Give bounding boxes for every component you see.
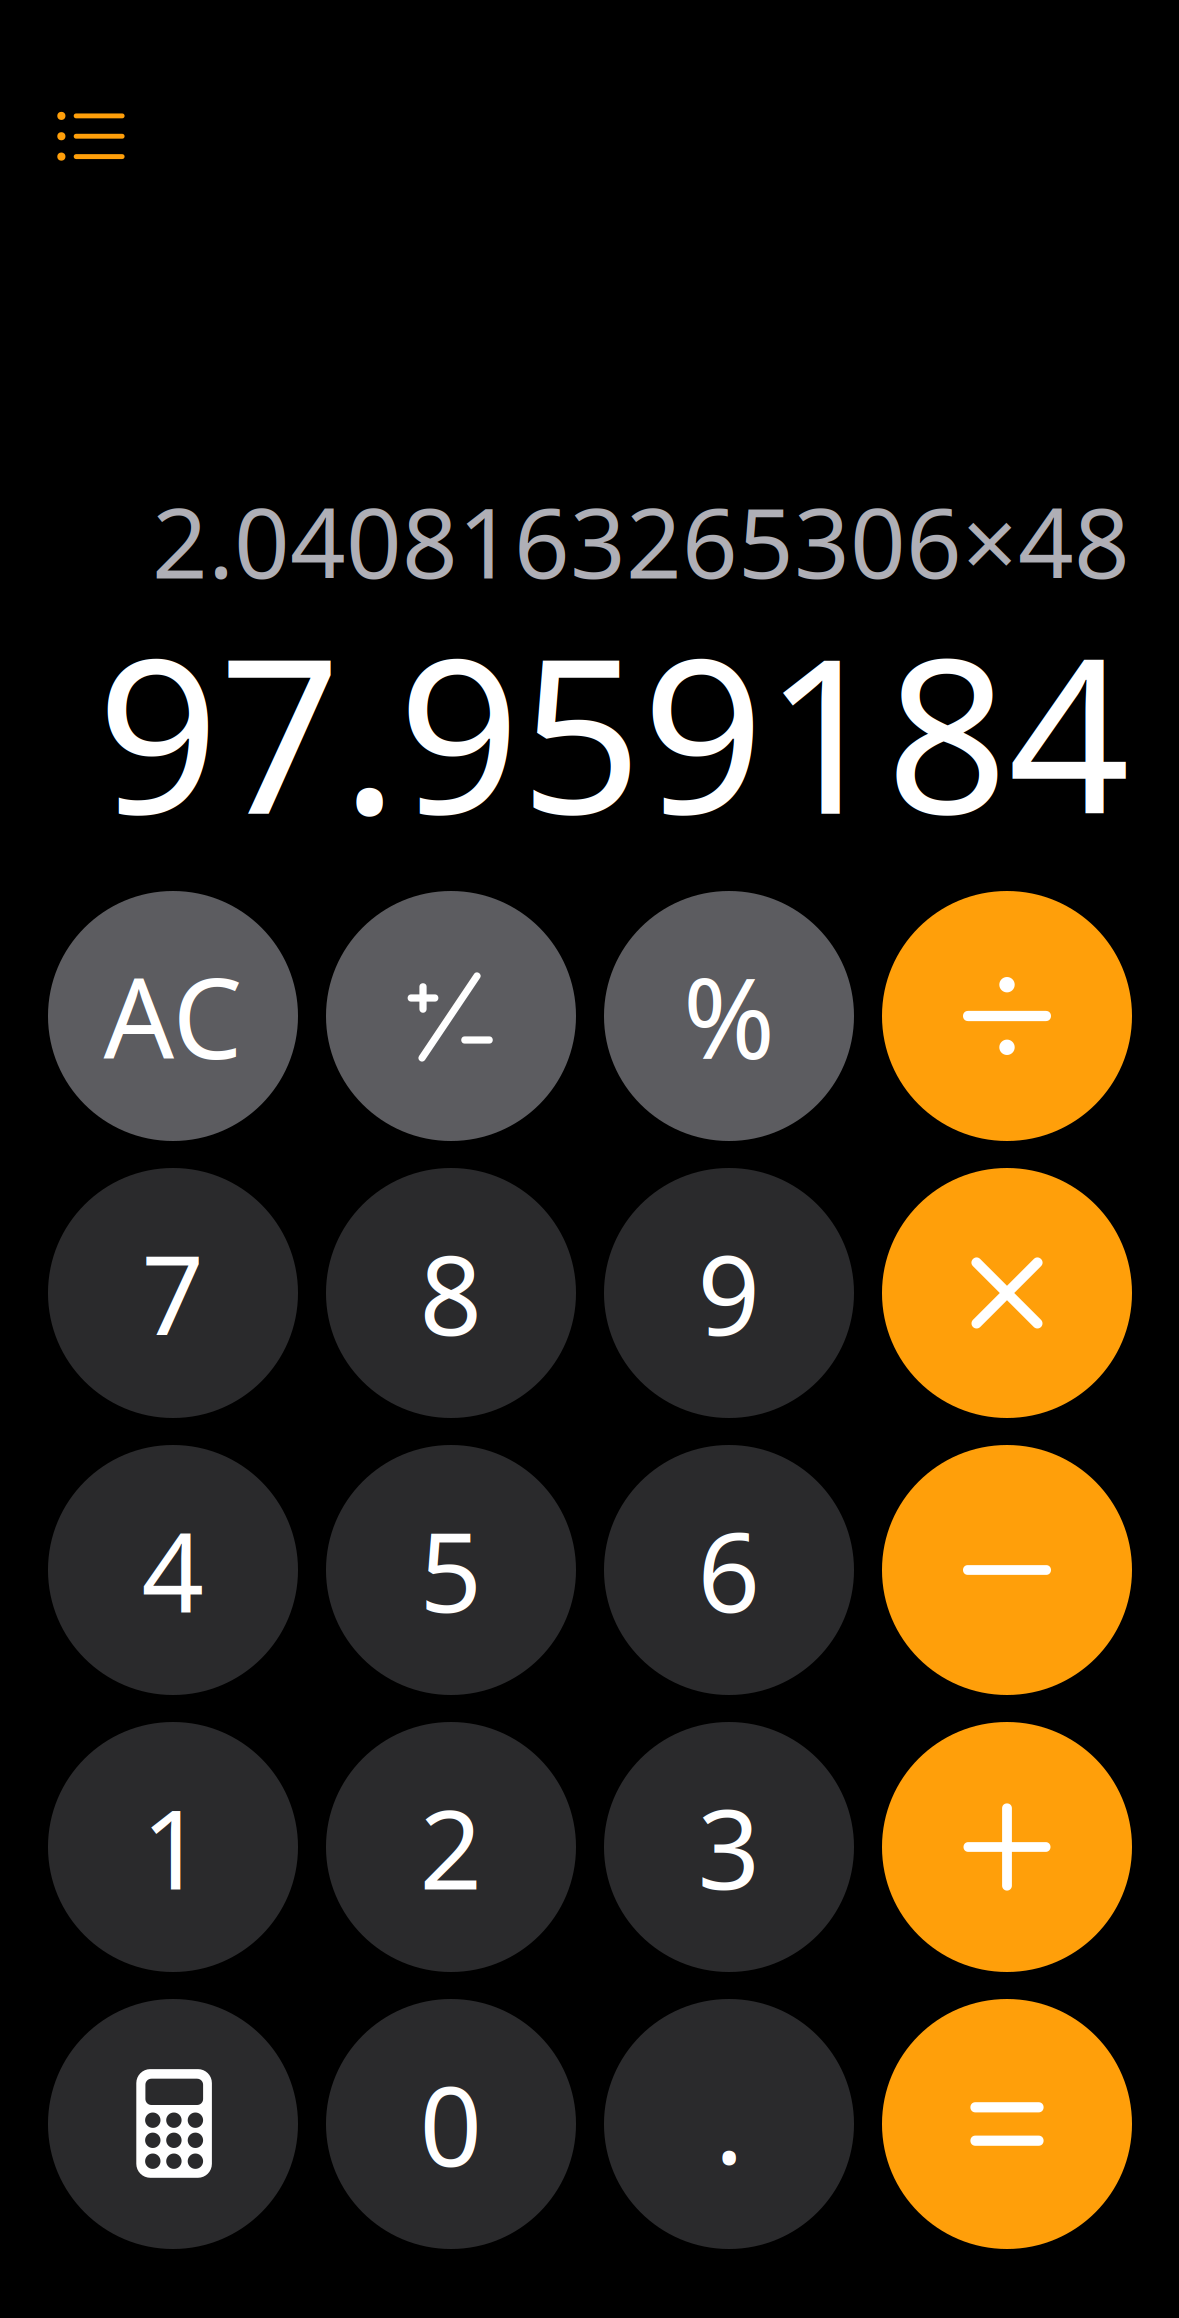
- staticText: 3: [697, 1774, 760, 1920]
- staticText: 5: [419, 1497, 482, 1643]
- button[interactable]: .: [604, 1999, 854, 2249]
- staticText: 2.0408163265306×48: [152, 476, 1130, 605]
- staticText: 9: [697, 1220, 760, 1366]
- button[interactable]: History: [29, 84, 153, 189]
- staticText: 1: [141, 1774, 204, 1920]
- button[interactable]: 9: [604, 1168, 854, 1418]
- staticText: 7: [141, 1220, 204, 1366]
- staticText: %: [683, 942, 775, 1089]
- button[interactable]: 2: [326, 1722, 576, 1972]
- button[interactable]: 4: [48, 1445, 298, 1695]
- button[interactable]: Equals: [882, 1999, 1132, 2249]
- staticText: 4: [141, 1497, 204, 1643]
- button[interactable]: 3: [604, 1722, 854, 1972]
- button[interactable]: 7: [48, 1168, 298, 1418]
- button[interactable]: Multiply: [882, 1168, 1132, 1418]
- button[interactable]: Divide: [882, 891, 1132, 1141]
- staticText: 2: [419, 1774, 482, 1920]
- staticText: 6: [697, 1497, 760, 1643]
- button[interactable]: Calculator: [48, 1999, 298, 2249]
- button[interactable]: Plus: [882, 1722, 1132, 1972]
- button[interactable]: 1: [48, 1722, 298, 1972]
- staticText: 0: [419, 2051, 482, 2197]
- staticText: AC: [103, 942, 242, 1089]
- button[interactable]: AC: [48, 891, 298, 1141]
- button[interactable]: 6: [604, 1445, 854, 1695]
- button[interactable]: Minus: [882, 1445, 1132, 1695]
- staticText: 8: [419, 1220, 482, 1366]
- button[interactable]: 0: [326, 1999, 576, 2249]
- button[interactable]: Plus Minus: [326, 891, 576, 1141]
- button[interactable]: 5: [326, 1445, 576, 1695]
- button[interactable]: 8: [326, 1168, 576, 1418]
- button[interactable]: %: [604, 891, 854, 1141]
- staticText: 97.959184: [97, 589, 1130, 873]
- staticText: .: [714, 2048, 743, 2194]
